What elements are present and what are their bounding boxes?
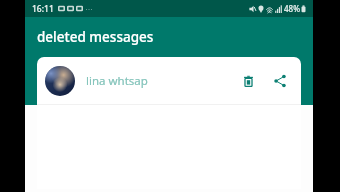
staticText: lina whtsap: [86, 73, 233, 89]
button[interactable]: lina whtsap: [37, 57, 301, 104]
staticText: deleted messages: [37, 28, 154, 46]
button[interactable]: Share: [265, 66, 295, 96]
button[interactable]: Delete: [233, 66, 263, 96]
staticText: 16:11: [32, 3, 54, 15]
staticText: 48%: [284, 3, 300, 14]
